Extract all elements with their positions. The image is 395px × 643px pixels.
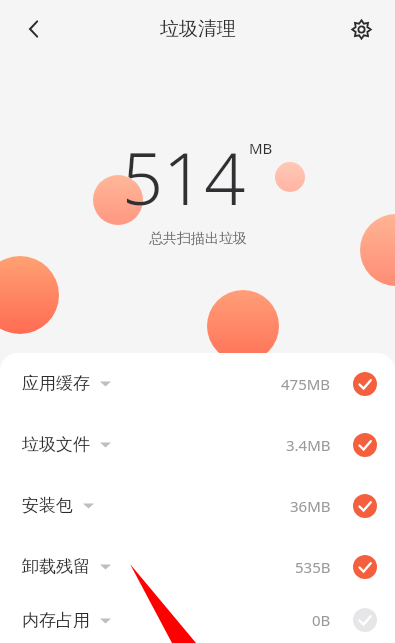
button[interactable]: 内存占用: [0, 597, 395, 643]
staticText: 36MB: [290, 496, 331, 516]
staticText: 3.4MB: [286, 435, 331, 455]
button[interactable]: Selected: [349, 551, 381, 583]
button[interactable]: Selected: [349, 490, 381, 522]
button[interactable]: 卸载残留: [0, 536, 395, 597]
button[interactable]: 应用缓存: [0, 353, 395, 414]
staticText: MB: [249, 138, 273, 158]
button[interactable]: Back: [12, 7, 56, 51]
staticText: 535B: [295, 557, 331, 577]
button[interactable]: Selected: [349, 368, 381, 400]
staticText: 514: [122, 128, 246, 226]
staticText: 0B: [312, 610, 331, 630]
staticText: 安装包: [22, 495, 73, 516]
staticText: 475MB: [281, 374, 331, 394]
staticText: 总共扫描出垃圾: [149, 230, 247, 248]
staticText: 应用缓存: [22, 373, 90, 394]
button[interactable]: Selected: [349, 429, 381, 461]
button[interactable]: Not selected: [349, 604, 381, 636]
staticText: 垃圾文件: [22, 434, 90, 455]
staticText: 垃圾清理: [160, 17, 236, 41]
button[interactable]: 安装包: [0, 475, 395, 536]
button[interactable]: 垃圾文件: [0, 414, 395, 475]
button[interactable]: Settings: [339, 7, 383, 51]
staticText: 内存占用: [22, 610, 90, 631]
staticText: 卸载残留: [22, 556, 90, 577]
